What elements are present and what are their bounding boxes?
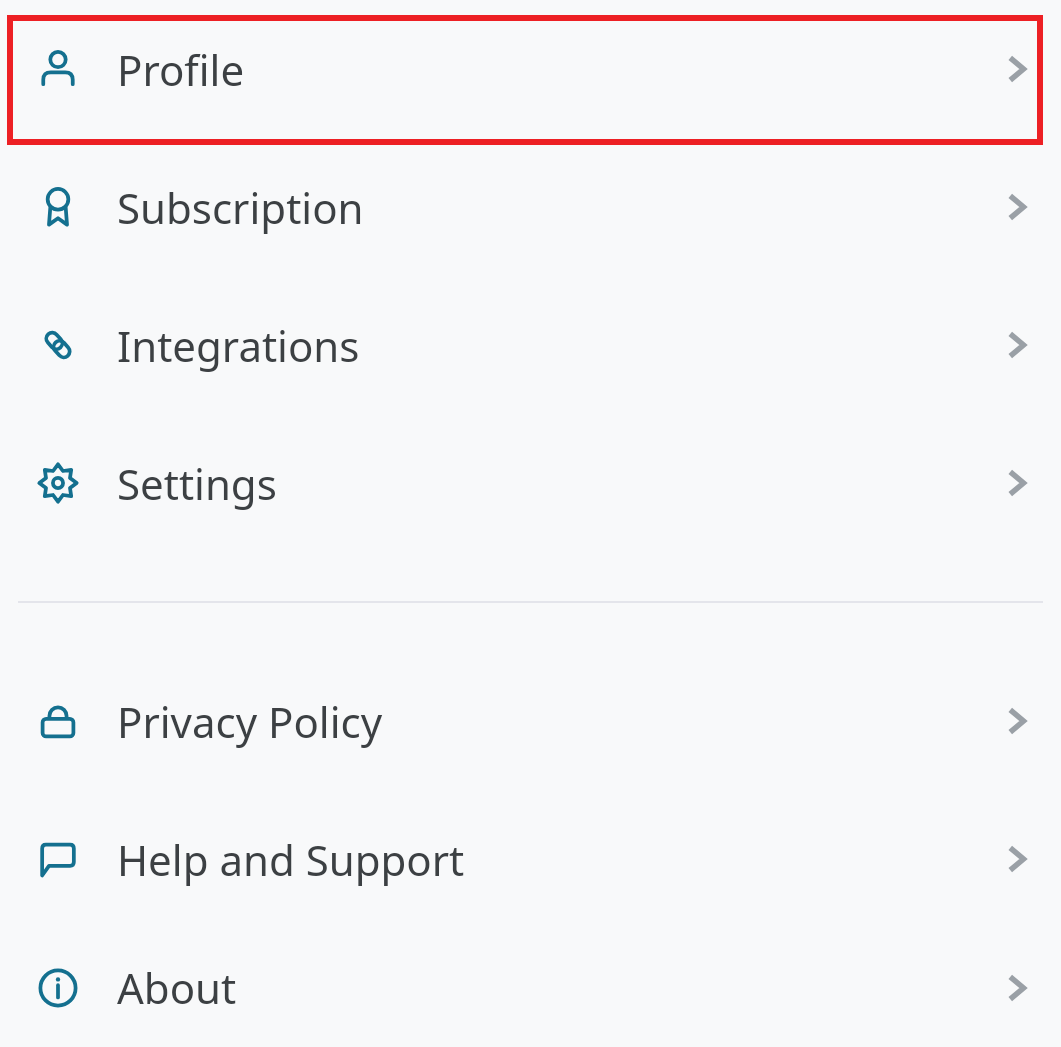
- staticText: Privacy Policy: [117, 693, 383, 750]
- button[interactable]: Help and Support: [0, 790, 1061, 928]
- button[interactable]: Profile: [0, 0, 1061, 138]
- button[interactable]: Integrations: [0, 276, 1061, 414]
- staticText: Help and Support: [117, 831, 465, 888]
- other: Open Help and Support: [995, 837, 1039, 881]
- staticText: About: [117, 959, 237, 1016]
- other: Open Subscription: [995, 185, 1039, 229]
- button[interactable]: About: [0, 928, 1061, 1047]
- staticText: Subscription: [117, 179, 364, 236]
- other: Open Privacy Policy: [995, 699, 1039, 743]
- staticText: Profile: [117, 41, 245, 98]
- button[interactable]: Settings: [0, 414, 1061, 552]
- other: Open Settings: [995, 461, 1039, 505]
- staticText: Integrations: [117, 317, 360, 374]
- other: Open Integrations: [995, 323, 1039, 367]
- button[interactable]: Privacy Policy: [0, 652, 1061, 790]
- staticText: Settings: [117, 455, 277, 512]
- button[interactable]: Subscription: [0, 138, 1061, 276]
- other: Open Profile: [995, 47, 1039, 91]
- other: Open About: [995, 966, 1039, 1010]
